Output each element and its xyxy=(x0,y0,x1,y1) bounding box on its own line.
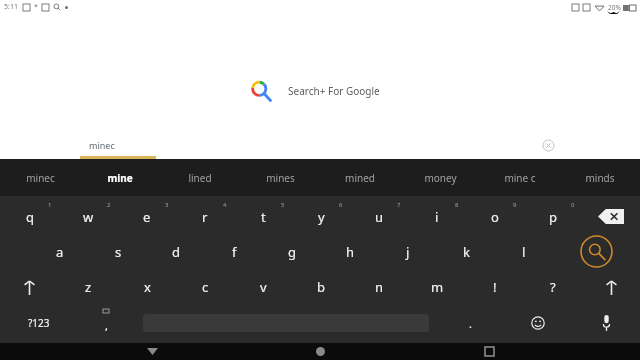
button[interactable]: h xyxy=(321,234,379,269)
button[interactable]: u xyxy=(350,198,408,234)
staticText: o xyxy=(491,208,499,226)
staticText: g xyxy=(288,243,296,261)
button[interactable]: i xyxy=(408,198,466,234)
button[interactable]: t xyxy=(234,198,292,234)
button[interactable]: v xyxy=(234,269,292,305)
button[interactable]: a xyxy=(30,234,89,269)
staticText: a xyxy=(56,243,64,261)
button[interactable]: c xyxy=(176,269,234,305)
button[interactable]: minds xyxy=(560,159,640,196)
staticText: 0 xyxy=(571,201,575,209)
button[interactable]: mine xyxy=(80,159,160,196)
staticText: mines xyxy=(266,171,295,185)
button[interactable]: ! xyxy=(466,269,524,305)
button[interactable]: mined xyxy=(320,159,400,196)
button[interactable]: Space xyxy=(135,305,436,341)
staticText: 2 xyxy=(107,201,111,209)
staticText: Search+ For Google xyxy=(288,84,380,98)
staticText: l xyxy=(522,243,526,261)
button[interactable]: Recents xyxy=(472,343,506,360)
staticText: 8 xyxy=(455,201,459,209)
other: Clear xyxy=(543,140,554,151)
button[interactable]: g xyxy=(263,234,321,269)
staticText: x xyxy=(144,278,151,296)
button[interactable]: Voice input xyxy=(572,305,640,341)
staticText: v xyxy=(260,278,267,296)
staticText: 3 xyxy=(165,201,169,209)
button[interactable]: Enter xyxy=(582,269,640,305)
staticText: 1 xyxy=(48,201,52,209)
staticText: mine xyxy=(107,171,133,185)
button[interactable]: mine c xyxy=(480,159,560,196)
staticText: h xyxy=(346,243,355,261)
button[interactable]: z xyxy=(59,269,118,305)
button[interactable]: o xyxy=(466,198,524,234)
staticText: mined xyxy=(345,171,375,185)
button[interactable]: Shift xyxy=(0,269,59,305)
staticText: 9 xyxy=(513,201,517,209)
staticText: minec xyxy=(89,139,115,151)
staticText: d xyxy=(172,243,180,261)
button[interactable]: . xyxy=(436,305,504,341)
button[interactable]: Emoji xyxy=(504,305,572,341)
button[interactable]: Home xyxy=(303,343,337,360)
button[interactable]: r xyxy=(176,198,234,234)
staticText: minec xyxy=(26,171,55,185)
staticText: m xyxy=(431,278,444,296)
staticText: p xyxy=(549,208,557,226)
button[interactable]: k xyxy=(437,234,495,269)
button[interactable]: m xyxy=(408,269,466,305)
button[interactable]: Backspace xyxy=(582,198,640,234)
button[interactable]: w xyxy=(59,198,118,234)
staticText: z xyxy=(85,278,92,296)
button[interactable]: ?123 xyxy=(0,305,77,341)
button[interactable]: mines xyxy=(240,159,320,196)
staticText: i xyxy=(435,208,439,226)
button[interactable]: Search xyxy=(553,234,640,269)
staticText: , xyxy=(105,318,108,333)
staticText: c xyxy=(202,278,209,296)
button[interactable]: d xyxy=(147,234,205,269)
staticText: e xyxy=(143,208,151,226)
button[interactable]: lined xyxy=(160,159,240,196)
button[interactable]: b xyxy=(292,269,350,305)
button[interactable]: Google search xyxy=(250,80,380,102)
button[interactable]: e xyxy=(118,198,176,234)
staticText: . xyxy=(469,316,472,331)
staticText: u xyxy=(375,208,384,226)
staticText: f xyxy=(232,243,237,261)
staticText: b xyxy=(317,278,325,296)
button[interactable]: x xyxy=(118,269,176,305)
staticText: q xyxy=(26,208,34,226)
button[interactable]: q xyxy=(0,198,59,234)
staticText: t xyxy=(261,208,266,226)
other: Google search xyxy=(250,80,272,102)
button[interactable]: j xyxy=(379,234,437,269)
button[interactable]: , xyxy=(77,305,135,341)
button[interactable]: money xyxy=(400,159,480,196)
staticText: j xyxy=(406,243,410,261)
button[interactable]: p xyxy=(524,198,582,234)
staticText: minds xyxy=(585,171,615,185)
button[interactable]: minec xyxy=(78,131,566,159)
button[interactable]: s xyxy=(89,234,147,269)
staticText: lined xyxy=(188,171,212,185)
button[interactable]: minec xyxy=(0,159,80,196)
staticText: 7 xyxy=(397,201,401,209)
staticText: mine c xyxy=(504,171,536,185)
staticText: 5:11 xyxy=(4,2,18,12)
staticText: r xyxy=(202,208,208,226)
button[interactable]: Back xyxy=(135,343,169,360)
staticText: money xyxy=(424,171,457,185)
staticText: 5 xyxy=(281,201,285,209)
staticText: 20% xyxy=(608,3,621,12)
button[interactable]: f xyxy=(205,234,263,269)
button[interactable]: y xyxy=(292,198,350,234)
staticText: * xyxy=(34,2,38,12)
button[interactable]: ? xyxy=(524,269,582,305)
button[interactable]: n xyxy=(350,269,408,305)
staticText: w xyxy=(83,208,94,226)
staticText: k xyxy=(463,243,470,261)
button[interactable]: l xyxy=(495,234,553,269)
staticText: n xyxy=(375,278,384,296)
